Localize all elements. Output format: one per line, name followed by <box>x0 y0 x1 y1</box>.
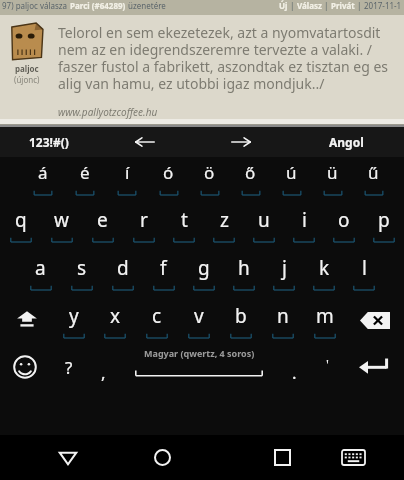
button[interactable]: Recent apps <box>251 435 314 480</box>
staticText: Angol <box>329 134 364 150</box>
button[interactable]: k <box>304 249 344 295</box>
button[interactable]: c <box>136 297 178 343</box>
staticText: z <box>220 207 229 233</box>
staticText: b <box>235 303 247 329</box>
staticText: ' <box>326 355 329 373</box>
button[interactable]: e <box>82 201 123 247</box>
button[interactable]: j <box>264 249 304 295</box>
button[interactable]: u <box>244 201 284 247</box>
button[interactable]: . <box>278 343 311 391</box>
staticText: | <box>355 0 364 11</box>
button[interactable]: v <box>178 297 220 343</box>
staticText: c <box>152 303 162 329</box>
button[interactable]: á <box>22 157 64 199</box>
staticText: n <box>277 303 289 329</box>
staticText: m <box>316 303 334 329</box>
staticText: y <box>69 303 79 329</box>
button[interactable]: p <box>364 201 404 247</box>
button[interactable]: ű <box>353 157 394 199</box>
button[interactable]: í <box>106 157 148 199</box>
button[interactable]: é <box>64 157 106 199</box>
staticText: q <box>15 207 27 233</box>
staticText: k <box>319 255 330 281</box>
staticText: u <box>258 207 270 233</box>
button[interactable]: ő <box>230 157 271 199</box>
staticText: (újonc) <box>14 74 40 85</box>
button[interactable]: o <box>324 201 364 247</box>
button[interactable]: Move cursor left <box>97 127 193 157</box>
staticText: a <box>35 255 46 281</box>
button[interactable]: ö <box>189 157 230 199</box>
button[interactable]: r <box>123 201 164 247</box>
button[interactable]: l <box>344 249 384 295</box>
staticText: ? <box>65 356 73 379</box>
button[interactable]: ? <box>50 343 87 391</box>
button[interactable]: , <box>87 343 120 391</box>
button[interactable]: w <box>41 201 82 247</box>
button[interactable]: Move cursor right <box>193 127 289 157</box>
button[interactable]: Privát <box>331 0 355 11</box>
staticText: i <box>302 207 307 233</box>
staticText: f <box>160 255 167 281</box>
staticText: x <box>110 303 121 329</box>
staticText: l <box>362 255 367 281</box>
button[interactable]: t <box>164 201 204 247</box>
staticText: t <box>181 207 188 233</box>
button[interactable]: ü <box>312 157 353 199</box>
button[interactable]: g <box>184 249 224 295</box>
staticText: ú <box>286 161 297 184</box>
staticText: . <box>292 361 297 384</box>
button[interactable]: b <box>220 297 262 343</box>
staticText: h <box>238 255 250 281</box>
button[interactable]: Angol <box>289 127 404 157</box>
staticText: é <box>80 161 90 184</box>
staticText: o <box>338 207 350 233</box>
staticText: paljoc <box>15 63 39 74</box>
button[interactable]: Enter <box>344 343 404 391</box>
staticText: s <box>77 255 87 281</box>
button[interactable]: n <box>262 297 304 343</box>
button[interactable]: ' <box>311 343 344 391</box>
button[interactable]: s <box>61 249 102 295</box>
staticText: ű <box>368 161 379 184</box>
staticText: Magyar (qwertz, 4 soros) <box>144 347 255 359</box>
button[interactable]: Válasz <box>297 0 322 11</box>
staticText: g <box>198 255 210 281</box>
staticText: w <box>54 207 69 233</box>
staticText: www.pallyotzcoffee.hu <box>58 105 158 119</box>
button[interactable]: Backspace <box>346 297 404 343</box>
button[interactable]: q <box>0 201 41 247</box>
staticText: 2017-11-1 <box>364 0 402 11</box>
button[interactable]: h <box>224 249 264 295</box>
staticText: ó <box>163 161 174 184</box>
button[interactable]: x <box>94 297 136 343</box>
button[interactable]: y <box>53 297 94 343</box>
staticText: ü <box>327 161 338 184</box>
staticText: j <box>282 255 287 281</box>
staticText: 97) paljoc válasza <box>2 0 70 11</box>
button[interactable]: Shift <box>0 297 53 343</box>
button[interactable]: z <box>204 201 244 247</box>
staticText: ö <box>204 161 215 184</box>
button[interactable]: 123!#() <box>0 127 97 157</box>
button[interactable]: a <box>20 249 61 295</box>
staticText: d <box>117 255 129 281</box>
button[interactable]: ú <box>271 157 312 199</box>
button[interactable]: ó <box>148 157 189 199</box>
button[interactable]: Magyar (qwertz, 4 soros) <box>120 343 278 391</box>
staticText: p <box>378 207 390 233</box>
button[interactable]: Back <box>36 435 99 480</box>
button[interactable]: m <box>304 297 346 343</box>
staticText: , <box>101 361 106 384</box>
button[interactable]: f <box>143 249 184 295</box>
button[interactable]: i <box>284 201 324 247</box>
button[interactable]: Emoji <box>0 343 50 391</box>
staticText: á <box>38 161 48 184</box>
button[interactable]: Új <box>279 0 288 11</box>
button[interactable]: Switch keyboard <box>322 435 385 480</box>
staticText: ő <box>245 161 256 184</box>
staticText: e <box>97 207 108 233</box>
staticText: üzenetére <box>126 0 166 11</box>
button[interactable]: Home <box>131 435 194 480</box>
button[interactable]: d <box>102 249 143 295</box>
